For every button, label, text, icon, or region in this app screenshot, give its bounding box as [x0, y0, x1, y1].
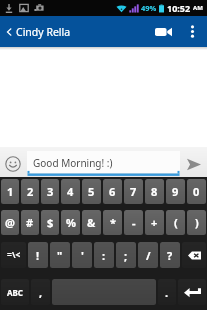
- button[interactable]: 3: [41, 179, 59, 204]
- button[interactable]: Video call: [147, 16, 180, 47]
- staticText: $: [47, 215, 54, 230]
- button[interactable]: Good Morning! :): [27, 151, 180, 177]
- staticText: 49%: [141, 3, 157, 13]
- staticText: 8: [151, 184, 158, 199]
- button[interactable]: 9: [166, 179, 185, 204]
- button[interactable]: ": [50, 242, 70, 268]
- staticText: !: [36, 248, 40, 263]
- staticText: Cindy Rella: [16, 25, 71, 39]
- staticText: &: [87, 215, 96, 230]
- staticText: /: [146, 248, 151, 263]
- button[interactable]: #: [21, 210, 39, 235]
- staticText: 1: [7, 184, 14, 199]
- button[interactable]: :: [94, 242, 114, 268]
- staticText: 0: [193, 184, 200, 199]
- staticText: 3: [47, 184, 54, 199]
- button[interactable]: +: [145, 210, 164, 235]
- button[interactable]: .: [158, 279, 176, 305]
- button[interactable]: More options: [180, 16, 204, 47]
- staticText: 10:52: [167, 2, 191, 14]
- staticText: ,: [39, 285, 43, 300]
- staticText: Good Morning! :): [33, 156, 113, 170]
- staticText: 6: [109, 184, 116, 199]
- button[interactable]: Emoji: [2, 153, 24, 175]
- button[interactable]: 6: [103, 179, 122, 204]
- staticText: ;: [124, 248, 128, 263]
- button[interactable]: Enter: [178, 279, 206, 305]
- button[interactable]: 2: [21, 179, 39, 204]
- staticText: #: [26, 215, 34, 230]
- staticText: :: [102, 248, 106, 263]
- button[interactable]: /: [138, 242, 158, 268]
- staticText: 9: [172, 184, 179, 199]
- staticText: *: [110, 215, 116, 230]
- button[interactable]: Backspace: [182, 242, 206, 268]
- staticText: %: [66, 215, 76, 230]
- staticText: +: [151, 215, 158, 230]
- button[interactable]: !: [28, 242, 48, 268]
- button[interactable]: -: [124, 210, 143, 235]
- button[interactable]: 1: [1, 179, 19, 204]
- button[interactable]: Cindy Rella: [3, 16, 74, 47]
- staticText: ': [81, 248, 84, 263]
- staticText: =\<: [7, 249, 21, 261]
- button[interactable]: 4: [61, 179, 80, 204]
- button[interactable]: 5: [82, 179, 101, 204]
- button[interactable]: 7: [124, 179, 143, 204]
- staticText: (: [174, 215, 178, 230]
- staticText: @: [5, 215, 15, 230]
- button[interactable]: 0: [187, 179, 206, 204]
- staticText: .: [165, 285, 169, 300]
- button[interactable]: *: [103, 210, 122, 235]
- button[interactable]: ?: [160, 242, 180, 268]
- button[interactable]: ): [187, 210, 206, 235]
- staticText: -: [132, 215, 136, 230]
- button[interactable]: ,: [31, 279, 50, 305]
- button[interactable]: ': [72, 242, 92, 268]
- button[interactable]: &: [82, 210, 101, 235]
- button[interactable]: 8: [145, 179, 164, 204]
- staticText: 5: [88, 184, 95, 199]
- button[interactable]: $: [41, 210, 59, 235]
- button[interactable]: Send: [182, 153, 206, 176]
- button[interactable]: @: [1, 210, 19, 235]
- button[interactable]: ABC: [1, 279, 29, 305]
- button[interactable]: =\<: [1, 242, 26, 268]
- button[interactable]: ;: [116, 242, 136, 268]
- staticText: ?: [167, 248, 173, 263]
- staticText: ): [195, 215, 199, 230]
- staticText: ": [57, 248, 63, 263]
- staticText: 2: [27, 184, 34, 199]
- staticText: 7: [130, 184, 137, 199]
- staticText: 4: [67, 184, 74, 199]
- button[interactable]: (: [166, 210, 185, 235]
- staticText: ABC: [7, 287, 23, 298]
- staticText: AM: [193, 4, 203, 12]
- button[interactable]: %: [61, 210, 80, 235]
